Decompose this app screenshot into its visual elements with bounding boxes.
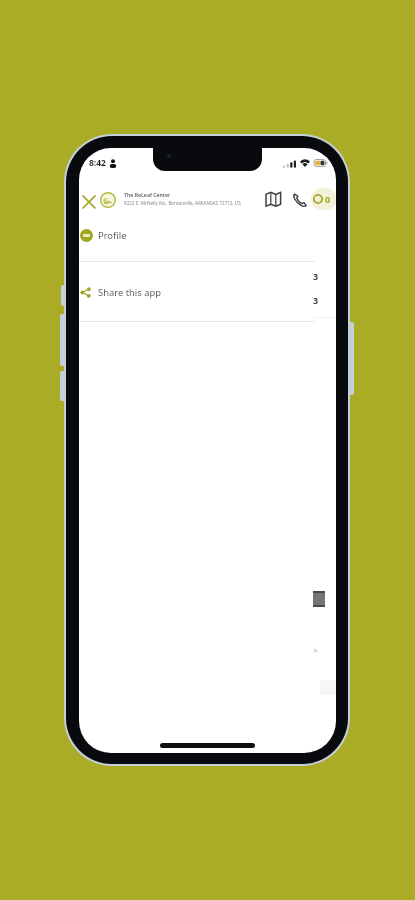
staticText: 8:42	[89, 157, 106, 169]
staticText: 0	[325, 193, 331, 205]
button[interactable]	[80, 193, 98, 211]
staticText: 9222 E. McNelly Rd., Bentonville, ARKANS…	[124, 200, 241, 206]
staticText: 3	[313, 294, 319, 306]
staticText: Share this app	[98, 286, 162, 299]
button[interactable]	[265, 191, 282, 208]
staticText: 3	[313, 270, 319, 282]
button[interactable]: MB	[79, 222, 315, 248]
staticText: MB	[83, 233, 90, 239]
staticText: s.	[314, 646, 319, 654]
button[interactable]	[292, 192, 309, 209]
button[interactable]: 0	[311, 188, 336, 210]
staticText: Profile	[98, 229, 127, 242]
staticText: The ReLeaf Center	[124, 191, 171, 198]
button[interactable]: Share this app	[79, 278, 315, 306]
